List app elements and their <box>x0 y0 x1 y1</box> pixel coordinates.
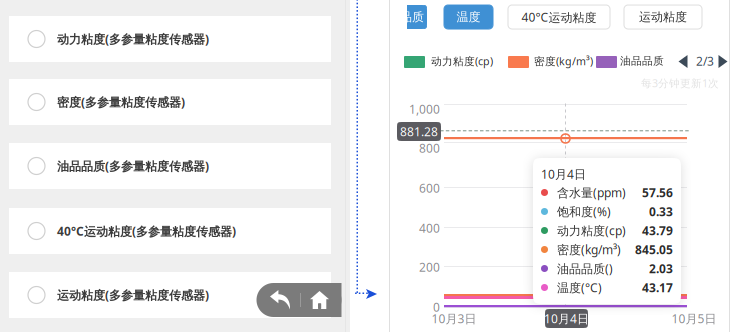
staticText: 40°C运动粘度 <box>521 9 596 25</box>
staticText: 密度(多参量粘度传感器) <box>57 94 185 110</box>
staticText: 400 <box>419 220 440 236</box>
staticText: 0.33 <box>649 203 673 219</box>
staticText: 油品品质(多参量粘度传感器) <box>57 158 209 174</box>
staticText: 油品品质() <box>557 260 613 276</box>
staticText: 动力粘度(cp) <box>431 54 493 68</box>
button[interactable]: Home <box>305 283 333 317</box>
staticText: 10月3日 <box>431 310 476 326</box>
button[interactable]: 运动粘度 <box>624 5 702 29</box>
staticText: 动力粘度(多参量粘度传感器) <box>57 31 209 47</box>
staticText: 600 <box>419 180 440 196</box>
staticText: 43.17 <box>642 279 673 295</box>
staticText: 运动粘度(多参量粘度传感器) <box>57 287 209 303</box>
staticText: 800 <box>419 140 440 156</box>
button[interactable]: 40°C运动粘度 <box>508 5 610 29</box>
button[interactable]: 运动粘度(多参量粘度传感器) <box>9 272 331 318</box>
staticText: 43.79 <box>642 222 673 238</box>
staticText: 845.05 <box>635 241 673 257</box>
staticText: 油品品质 <box>376 10 424 24</box>
staticText: 0 <box>433 299 440 315</box>
staticText: 1,000 <box>409 101 440 117</box>
button[interactable]: Back <box>266 283 294 317</box>
staticText: 每3分钟更新1次 <box>641 76 719 90</box>
staticText: 密度(kg/m³) <box>557 241 621 257</box>
button[interactable]: Previous page <box>678 55 688 68</box>
button[interactable]: 油品品质(多参量粘度传感器) <box>9 143 331 189</box>
staticText: 运动粘度 <box>639 10 687 24</box>
button[interactable]: 温度 <box>444 5 493 29</box>
staticText: 2/3 <box>696 53 714 69</box>
staticText: 200 <box>419 259 440 275</box>
button[interactable]: 动力粘度(多参量粘度传感器) <box>9 16 331 62</box>
staticText: 881.28 <box>400 123 438 139</box>
staticText: 温度 <box>456 10 480 24</box>
button[interactable]: 油品品质 <box>373 5 427 29</box>
staticText: 40°C运动粘度(多参量粘度传感器) <box>57 223 236 239</box>
button[interactable]: 40°C运动粘度(多参量粘度传感器) <box>9 208 331 254</box>
button[interactable]: 密度(多参量粘度传感器) <box>9 79 331 125</box>
staticText: 10月4日 <box>544 310 589 326</box>
staticText: 密度(kg/m³) <box>534 54 593 68</box>
staticText: 57.56 <box>642 184 673 200</box>
staticText: 温度(°C) <box>557 279 602 295</box>
staticText: 油品品质 <box>620 54 664 67</box>
staticText: 动力粘度(cp) <box>557 222 626 238</box>
staticText: 10月5日 <box>671 310 716 326</box>
staticText: 饱和度(%) <box>557 203 611 219</box>
button[interactable]: Next page <box>718 55 728 68</box>
staticText: 含水量(ppm) <box>557 184 626 200</box>
staticText: 10月4日 <box>541 166 586 182</box>
staticText: 2.03 <box>649 260 673 276</box>
